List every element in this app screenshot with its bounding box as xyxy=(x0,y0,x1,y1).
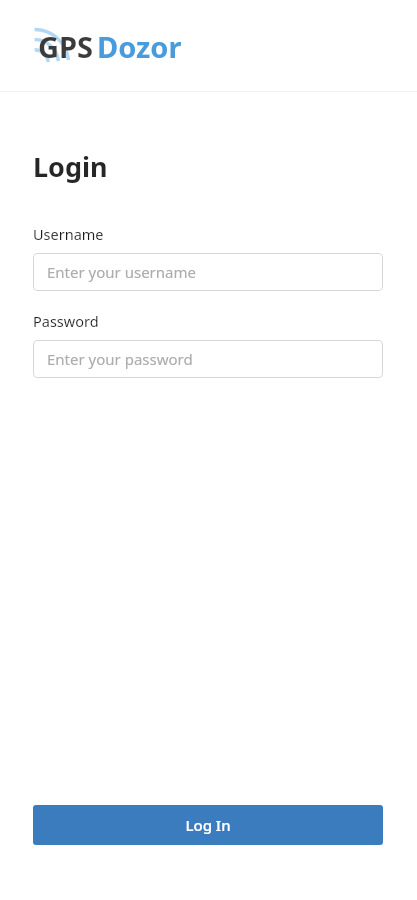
staticText: Login xyxy=(33,148,108,185)
staticText: GPS xyxy=(38,27,93,66)
button[interactable]: Enter your password xyxy=(33,340,383,378)
button[interactable]: Log In xyxy=(33,805,383,845)
other: GPS Dozor xyxy=(30,20,225,72)
staticText: Enter your password xyxy=(47,349,193,369)
staticText: Log In xyxy=(185,815,231,835)
staticText: Username xyxy=(33,224,104,244)
staticText: Enter your username xyxy=(47,262,196,282)
staticText: Password xyxy=(33,311,99,331)
staticText: Dozor xyxy=(97,27,182,66)
button[interactable]: Enter your username xyxy=(33,253,383,291)
